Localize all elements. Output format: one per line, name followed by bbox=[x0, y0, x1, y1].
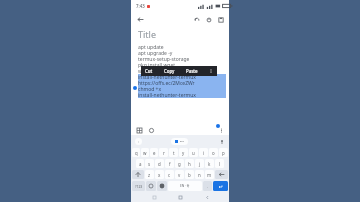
button[interactable]: Emoji bbox=[157, 181, 167, 191]
staticText: d bbox=[158, 161, 161, 167]
staticText: n bbox=[198, 172, 201, 178]
button[interactable]: More options bbox=[217, 126, 225, 134]
button[interactable]: d bbox=[155, 159, 164, 168]
staticText: EN · हि bbox=[180, 184, 190, 188]
button[interactable]: Recents bbox=[150, 193, 158, 201]
button[interactable]: w bbox=[141, 148, 149, 157]
staticText: h bbox=[188, 161, 191, 167]
button[interactable]: i bbox=[199, 148, 208, 157]
staticText: b bbox=[188, 172, 191, 178]
button[interactable]: Cut bbox=[144, 68, 154, 74]
button[interactable]: s bbox=[145, 159, 154, 168]
button[interactable]: Back bbox=[203, 193, 211, 201]
button[interactable]: l bbox=[215, 159, 224, 168]
button[interactable]: e bbox=[150, 148, 158, 157]
staticText: e bbox=[153, 150, 156, 156]
staticText: u bbox=[192, 150, 195, 156]
button[interactable]: t bbox=[169, 148, 178, 157]
staticText: l bbox=[219, 161, 221, 167]
button[interactable]: z bbox=[145, 170, 154, 179]
button[interactable]: o bbox=[209, 148, 218, 157]
button[interactable]: q bbox=[132, 148, 140, 157]
button[interactable]: Shift bbox=[132, 170, 144, 179]
button[interactable]: j bbox=[195, 159, 204, 168]
button[interactable]: Redo bbox=[204, 15, 213, 24]
staticText: o bbox=[212, 150, 215, 156]
button[interactable]: Back bbox=[135, 14, 145, 24]
button[interactable]: r bbox=[159, 148, 168, 157]
staticText: Copy bbox=[164, 68, 175, 74]
button[interactable]: Voice input bbox=[218, 138, 225, 145]
button[interactable]: b bbox=[185, 170, 194, 179]
staticText: m bbox=[207, 172, 212, 178]
staticText: chmod +x bbox=[138, 86, 162, 92]
button[interactable]: ••• bbox=[171, 138, 188, 145]
staticText: install-nethunter-termux bbox=[138, 74, 196, 80]
staticText: x bbox=[158, 172, 161, 178]
staticText: s bbox=[148, 161, 151, 167]
button[interactable]: Add table bbox=[135, 126, 143, 134]
button[interactable]: k bbox=[205, 159, 214, 168]
staticText: . bbox=[207, 184, 209, 189]
staticText: j bbox=[199, 161, 201, 167]
button[interactable]: c bbox=[165, 170, 174, 179]
staticText: Cut bbox=[145, 68, 153, 74]
button[interactable]: History bbox=[147, 126, 155, 134]
staticText: k bbox=[208, 161, 211, 167]
button[interactable]: u bbox=[189, 148, 198, 157]
button[interactable]: Copy bbox=[163, 68, 176, 74]
staticText: : bbox=[138, 139, 139, 144]
button[interactable]: Home bbox=[176, 193, 184, 201]
button[interactable]: x bbox=[155, 170, 164, 179]
button[interactable]: More options bbox=[208, 68, 214, 74]
staticText: a bbox=[139, 161, 142, 167]
button[interactable]: g bbox=[175, 159, 184, 168]
staticText: Title bbox=[138, 28, 156, 40]
button[interactable]: Clipboard bbox=[135, 138, 142, 145]
staticText: apt upgrade -y bbox=[138, 50, 173, 56]
staticText: f bbox=[169, 161, 171, 167]
staticText: 7:43 bbox=[136, 3, 145, 9]
staticText: q bbox=[135, 150, 138, 156]
staticText: install-nethunter-termux bbox=[138, 92, 196, 98]
staticText: https://offs.ec/2MceZWr bbox=[138, 80, 195, 86]
staticText: p bbox=[222, 150, 225, 156]
staticText: z bbox=[148, 172, 151, 178]
staticText: w bbox=[143, 150, 147, 156]
staticText: g bbox=[178, 161, 181, 167]
staticText: v bbox=[178, 172, 181, 178]
staticText: y bbox=[182, 150, 185, 156]
button[interactable]: p bbox=[219, 148, 228, 157]
button[interactable]: Space bbox=[168, 181, 202, 191]
staticText: ••• bbox=[180, 139, 184, 144]
button[interactable]: Undo bbox=[192, 15, 201, 24]
button[interactable]: a bbox=[136, 159, 144, 168]
staticText: r bbox=[163, 150, 165, 156]
button[interactable]: Settings bbox=[146, 181, 156, 191]
button[interactable]: Paste bbox=[185, 68, 199, 74]
button[interactable]: m bbox=[205, 170, 214, 179]
staticText: wget https://offs.ec bbox=[138, 68, 184, 74]
button[interactable]: n bbox=[195, 170, 204, 179]
staticText: apt update bbox=[138, 44, 164, 50]
button[interactable]: f bbox=[165, 159, 174, 168]
button[interactable]: Enter bbox=[213, 181, 228, 191]
button[interactable]: h bbox=[185, 159, 194, 168]
staticText: termux-setup-storage bbox=[138, 56, 190, 62]
staticText: t bbox=[173, 150, 175, 156]
button[interactable]: ?123 bbox=[132, 181, 145, 191]
button[interactable]: v bbox=[175, 170, 184, 179]
button[interactable]: y bbox=[179, 148, 188, 157]
staticText: c bbox=[168, 172, 171, 178]
staticText: ?123 bbox=[135, 184, 143, 189]
button[interactable]: Backspace bbox=[215, 170, 228, 179]
staticText: pkg install wget bbox=[138, 62, 176, 68]
staticText: i bbox=[203, 150, 205, 156]
staticText: Paste bbox=[186, 68, 198, 74]
button[interactable]: Save bbox=[216, 15, 225, 24]
